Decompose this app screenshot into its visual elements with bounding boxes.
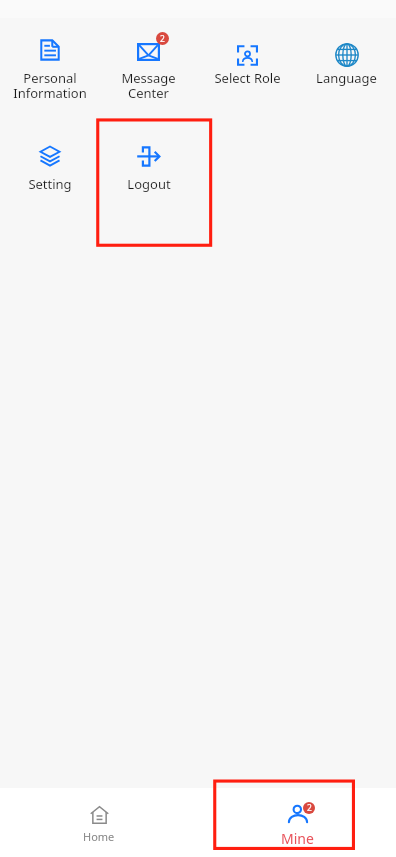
button[interactable]: Setting <box>0 127 99 233</box>
other: Language <box>335 43 359 67</box>
staticText: 2 <box>307 802 312 814</box>
staticText: Language <box>316 69 377 87</box>
button[interactable]: Home <box>0 788 198 857</box>
button[interactable]: Message centre <box>99 21 198 127</box>
staticText: Logout <box>127 175 171 193</box>
staticText: Personal Information <box>13 69 87 102</box>
other: Select role <box>237 45 258 66</box>
staticText: 2 <box>160 33 165 45</box>
staticText: Message Center <box>121 69 176 102</box>
other: Logout <box>136 146 161 167</box>
other: Message centre <box>137 43 160 61</box>
button[interactable]: Language <box>297 21 396 127</box>
staticText: Setting <box>28 175 72 193</box>
button[interactable]: Logout <box>99 127 198 233</box>
staticText: Home <box>83 829 115 844</box>
other: Personal information <box>39 39 61 61</box>
button[interactable]: Personal information <box>0 21 99 127</box>
staticText: Select Role <box>214 69 281 87</box>
other: Setting <box>39 145 61 167</box>
button[interactable]: Select role <box>198 21 297 127</box>
staticText: Mine <box>281 829 314 848</box>
button[interactable]: 2 <box>198 788 396 857</box>
